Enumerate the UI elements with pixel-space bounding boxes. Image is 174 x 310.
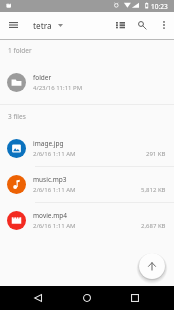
button[interactable]: View mode (108, 12, 132, 38)
staticText: folder (33, 73, 52, 82)
button[interactable]: folder (0, 65, 174, 100)
staticText: 10:23 (151, 2, 168, 11)
button[interactable]: Navigation menu (0, 12, 26, 38)
staticText: 291 KB (146, 150, 166, 158)
staticText: music.mp3 (33, 175, 67, 184)
staticText: image.jpg (33, 139, 64, 148)
staticText: 2,687 KB (141, 222, 166, 230)
staticText: 4/23/16 11:11 PM (33, 84, 83, 92)
staticText: 1 folder (8, 46, 32, 55)
button[interactable]: movie.mp4 (0, 203, 174, 238)
button[interactable]: Scroll to top (139, 253, 165, 279)
button[interactable]: Search (132, 12, 153, 38)
staticText: movie.mp4 (33, 211, 68, 220)
button[interactable]: Back (22, 286, 54, 309)
button[interactable]: Home (71, 286, 103, 309)
button[interactable]: More options (153, 12, 174, 38)
staticText: 3 files (8, 112, 26, 121)
staticText: 2/6/16 1:11 AM (33, 186, 76, 194)
staticText: 2/6/16 1:11 AM (33, 222, 76, 230)
button[interactable]: tetra (33, 12, 63, 38)
button[interactable]: Recent apps (119, 286, 151, 309)
staticText: tetra (33, 20, 52, 31)
staticText: 5,812 KB (141, 186, 166, 194)
button[interactable]: music.mp3 (0, 167, 174, 202)
staticText: 2/6/16 1:11 AM (33, 150, 76, 158)
button[interactable]: image.jpg (0, 131, 174, 166)
